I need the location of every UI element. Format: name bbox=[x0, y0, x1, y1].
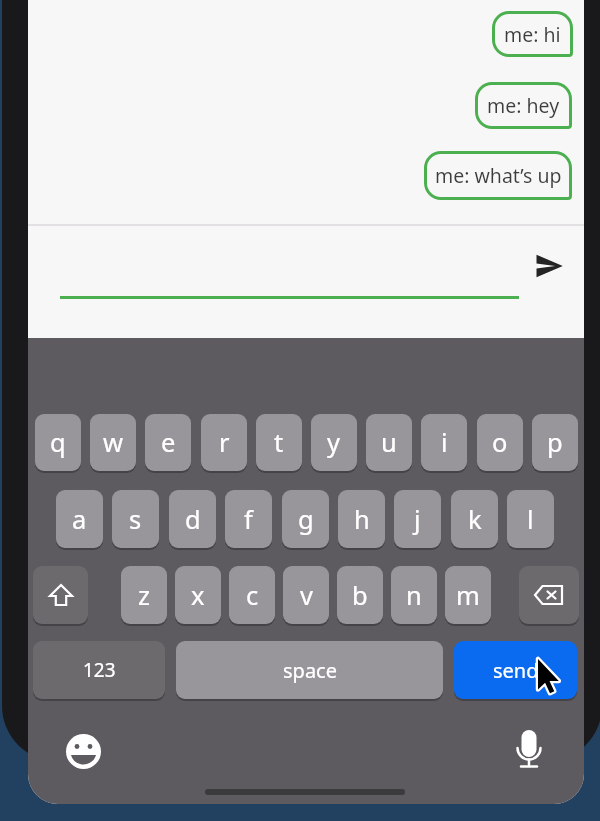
button[interactable]: x bbox=[175, 566, 221, 624]
staticText: n bbox=[406, 578, 422, 613]
staticText: l bbox=[527, 502, 534, 537]
staticText: d bbox=[185, 502, 201, 537]
button[interactable]: send bbox=[454, 641, 577, 699]
staticText: f bbox=[244, 502, 253, 537]
staticText: i bbox=[441, 425, 448, 460]
button[interactable]: u bbox=[366, 414, 412, 471]
staticText: w bbox=[103, 425, 124, 460]
button[interactable]: p bbox=[532, 414, 578, 471]
staticText: j bbox=[414, 502, 421, 537]
button[interactable]: y bbox=[311, 414, 357, 471]
staticText: v bbox=[300, 578, 313, 613]
staticText: m bbox=[456, 578, 480, 613]
staticText: t bbox=[274, 425, 284, 460]
button[interactable]: g bbox=[282, 490, 329, 548]
button[interactable] bbox=[33, 566, 88, 624]
button[interactable]: s bbox=[112, 490, 159, 548]
staticText: 123 bbox=[83, 657, 116, 683]
staticText: z bbox=[138, 578, 150, 613]
staticText: q bbox=[50, 425, 66, 460]
button[interactable] bbox=[519, 566, 579, 624]
button[interactable] bbox=[66, 734, 101, 769]
staticText: b bbox=[352, 578, 368, 613]
staticText: y bbox=[327, 425, 341, 460]
staticText: g bbox=[298, 502, 314, 537]
staticText: u bbox=[381, 425, 397, 460]
button[interactable]: m bbox=[445, 566, 491, 624]
button[interactable]: w bbox=[90, 414, 136, 471]
button[interactable]: q bbox=[35, 414, 81, 471]
staticText: p bbox=[547, 425, 563, 460]
staticText: h bbox=[354, 502, 370, 537]
button[interactable]: o bbox=[477, 414, 523, 471]
staticText: a bbox=[72, 502, 87, 537]
button[interactable] bbox=[516, 730, 542, 772]
button[interactable]: j bbox=[394, 490, 441, 548]
button[interactable]: f bbox=[225, 490, 272, 548]
staticText: send bbox=[493, 657, 539, 684]
staticText: me: what’s up bbox=[435, 162, 562, 189]
button[interactable]: l bbox=[507, 490, 554, 548]
button[interactable]: c bbox=[229, 566, 275, 624]
staticText: r bbox=[219, 425, 230, 460]
button[interactable]: b bbox=[337, 566, 383, 624]
button[interactable] bbox=[534, 251, 566, 281]
staticText: space bbox=[283, 657, 337, 684]
staticText: s bbox=[129, 502, 142, 537]
staticText: me: hey bbox=[487, 92, 560, 119]
staticText: k bbox=[468, 502, 482, 537]
button[interactable]: h bbox=[338, 490, 385, 548]
button[interactable]: space bbox=[176, 641, 443, 699]
button[interactable]: a bbox=[56, 490, 103, 548]
button[interactable]: t bbox=[256, 414, 302, 471]
staticText: me: hi bbox=[504, 21, 561, 48]
button[interactable]: n bbox=[391, 566, 437, 624]
staticText: o bbox=[492, 425, 508, 460]
button[interactable]: v bbox=[283, 566, 329, 624]
staticText: e bbox=[161, 425, 176, 460]
staticText: x bbox=[191, 578, 205, 613]
button[interactable]: e bbox=[145, 414, 191, 471]
staticText: c bbox=[246, 578, 259, 613]
button[interactable]: d bbox=[169, 490, 216, 548]
button[interactable]: i bbox=[421, 414, 467, 471]
button[interactable]: k bbox=[451, 490, 498, 548]
button[interactable]: z bbox=[121, 566, 167, 624]
button[interactable]: r bbox=[201, 414, 247, 471]
button[interactable]: 123 bbox=[33, 641, 165, 699]
